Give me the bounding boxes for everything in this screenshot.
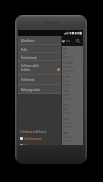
staticText: Kossuth	[63, 61, 74, 65]
button[interactable]: Search	[76, 39, 80, 43]
staticText: Hívások	[24, 144, 36, 145]
button[interactable]: Petőfi	[18, 74, 83, 88]
staticText: Deák	[63, 89, 70, 93]
staticText: 3, 4 Ft	[63, 87, 71, 88]
staticText: Lorem i	[63, 55, 73, 59]
staticText: Általános	[21, 39, 35, 43]
staticText: Bem J	[63, 103, 71, 107]
button[interactable]: Névjegy aktív	[18, 85, 61, 94]
button[interactable]: Ady	[18, 46, 83, 60]
staticText: Pécs u	[63, 79, 72, 83]
staticText: 2, 6 Ft	[63, 115, 71, 116]
button[interactable]: Deák	[18, 88, 83, 102]
staticText: Petőfi	[63, 75, 71, 79]
staticText: Névjegy aktív	[21, 88, 41, 92]
button[interactable]: Általános	[18, 36, 61, 45]
staticText: Telefonszám	[24, 137, 42, 141]
staticText: Erőforrás	[21, 78, 35, 82]
staticText: Eger	[63, 107, 69, 111]
staticText: szeged	[63, 65, 72, 69]
staticText: Arany	[63, 117, 71, 121]
staticText: Telefonos beállítások	[20, 130, 47, 134]
staticText: 8, 5 Ft	[63, 101, 71, 102]
staticText: Jókai	[63, 131, 69, 135]
staticText: 7, 9 Ft	[63, 129, 71, 130]
button[interactable]: Erőforrás	[18, 75, 61, 85]
staticText: Felhasználói felület	[21, 64, 39, 72]
button[interactable]: Hívások	[18, 142, 61, 145]
staticText: Sed eius	[63, 97, 74, 101]
staticText: Ady	[63, 47, 68, 51]
button[interactable]: Kossuth	[18, 60, 83, 74]
button[interactable]: Fiók	[18, 45, 61, 53]
button[interactable]: Bem J	[18, 102, 83, 116]
staticText: Amet co	[63, 83, 74, 87]
staticText: Dolor sit	[63, 69, 74, 73]
staticText: Győr t	[63, 93, 71, 97]
staticText: Miskolc	[63, 135, 73, 139]
staticText: Incidid	[63, 125, 72, 129]
button[interactable]: Arany	[18, 116, 83, 130]
staticText: Tempor	[63, 111, 73, 115]
staticText: 4, 3 Ft	[63, 143, 71, 144]
button[interactable]: Favorites	[62, 40, 65, 43]
staticText: Bp.	[63, 51, 68, 55]
staticText: 12, 1 Ft	[63, 59, 73, 60]
staticText: Értesítések	[21, 56, 37, 60]
button[interactable]: Értesítések	[18, 53, 61, 61]
staticText: 19, 2 Ft	[63, 73, 73, 74]
staticText: Fiók	[21, 48, 27, 52]
staticText: Debr u	[63, 121, 72, 125]
button[interactable]: Telefonszám	[18, 135, 61, 142]
button[interactable]: Jókai	[18, 130, 83, 144]
staticText: Ut labo	[63, 139, 73, 143]
button[interactable]: Felhasználói felület	[18, 61, 61, 75]
